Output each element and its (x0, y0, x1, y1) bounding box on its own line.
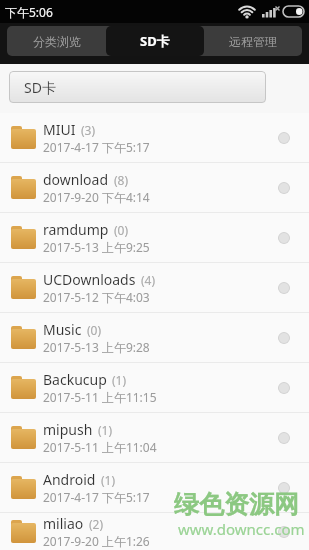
staticText: SD卡 (140, 32, 170, 50)
button[interactable]: 分类浏览 (7, 26, 106, 56)
staticText: SD卡 (24, 78, 56, 97)
staticText: (3) (81, 122, 96, 138)
staticText: download (43, 170, 109, 189)
button[interactable]: Music (0, 313, 309, 363)
staticText: 2017-5-12 下午4:03 (43, 289, 150, 305)
staticText: UCDownloads (43, 270, 136, 289)
staticText: MIUI (43, 120, 76, 139)
button[interactable]: 远程管理 (204, 26, 302, 56)
staticText: 绿色资源网 (174, 489, 299, 520)
staticText: (1) (112, 372, 127, 388)
staticText: (1) (101, 472, 116, 488)
staticText: 2017-4-17 下午5:17 (43, 139, 150, 155)
staticText: (2) (89, 516, 104, 532)
staticText: 下午5:06 (5, 4, 53, 20)
staticText: 远程管理 (229, 34, 277, 49)
staticText: (4) (141, 272, 156, 288)
staticText: 2017-9-20 下午4:14 (43, 189, 150, 205)
staticText: 2017-9-20 上午1:26 (43, 533, 150, 549)
staticText: 分类浏览 (33, 34, 81, 49)
staticText: ramdump (43, 220, 109, 239)
staticText: miliao (43, 514, 84, 533)
button[interactable]: ramdump (0, 213, 309, 263)
staticText: 2017-5-13 上午9:28 (43, 339, 150, 355)
button[interactable]: Android (0, 463, 309, 513)
staticText: Android (43, 470, 96, 489)
staticText: Backucup (43, 370, 107, 389)
button[interactable]: SD卡 (106, 26, 204, 56)
staticText: (0) (87, 322, 102, 338)
button[interactable]: SD卡 (9, 71, 266, 103)
staticText: 2017-5-11 上午11:04 (43, 439, 157, 455)
staticText: 2017-5-11 上午11:15 (43, 389, 157, 405)
staticText: 2017-5-13 上午9:25 (43, 239, 150, 255)
button[interactable]: MIUI (0, 113, 309, 163)
button[interactable]: Backucup (0, 363, 309, 413)
button[interactable]: miliao (0, 513, 309, 550)
staticText: (0) (114, 222, 129, 238)
button[interactable]: UCDownloads (0, 263, 309, 313)
staticText: 2017-4-17 下午5:17 (43, 489, 150, 505)
staticText: Music (43, 320, 82, 339)
staticText: www.downcc.com (178, 519, 305, 539)
button[interactable]: download (0, 163, 309, 213)
button[interactable]: mipush (0, 413, 309, 463)
staticText: (8) (114, 172, 129, 188)
staticText: (1) (98, 422, 113, 438)
staticText: mipush (43, 420, 93, 439)
